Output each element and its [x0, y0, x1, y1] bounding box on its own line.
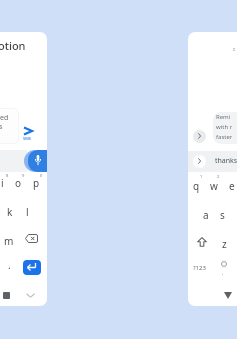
- staticText: o: [15, 176, 22, 190]
- button[interactable]: c: [188, 32, 237, 306]
- staticText: 2: [217, 174, 220, 179]
- button[interactable]: [224, 292, 232, 299]
- staticText: c: [233, 46, 236, 53]
- button[interactable]: [28, 150, 47, 172]
- staticText: Remi: [216, 113, 231, 121]
- button[interactable]: [193, 130, 206, 143]
- button[interactable]: [26, 293, 35, 298]
- staticText: i: [1, 176, 4, 190]
- staticText: s: [220, 208, 225, 222]
- staticText: ed: [0, 113, 9, 123]
- staticText: a: [203, 208, 209, 222]
- staticText: l: [26, 205, 29, 219]
- button[interactable]: [3, 292, 10, 299]
- staticText: SMS: [23, 136, 32, 141]
- button[interactable]: [23, 260, 41, 275]
- staticText: q: [193, 179, 200, 193]
- staticText: thanks: [215, 156, 237, 166]
- staticText: 9: [22, 173, 25, 178]
- staticText: e: [229, 179, 235, 193]
- staticText: p: [33, 176, 40, 190]
- staticText: m: [4, 234, 14, 248]
- staticText: ?123: [193, 264, 206, 272]
- staticText: with r: [216, 123, 233, 131]
- staticText: faster: [216, 133, 233, 141]
- staticText: 8: [6, 173, 9, 178]
- staticText: 1: [200, 174, 203, 179]
- staticText: 0: [40, 173, 43, 178]
- staticText: k: [7, 205, 13, 219]
- staticText: z: [222, 237, 227, 251]
- staticText: w: [210, 179, 218, 193]
- staticText: .: [8, 258, 11, 272]
- button[interactable]: otion: [0, 32, 47, 306]
- staticText: otion: [0, 38, 26, 53]
- staticText: s: [0, 122, 3, 132]
- staticText: ,: [222, 270, 224, 277]
- button[interactable]: [193, 155, 206, 168]
